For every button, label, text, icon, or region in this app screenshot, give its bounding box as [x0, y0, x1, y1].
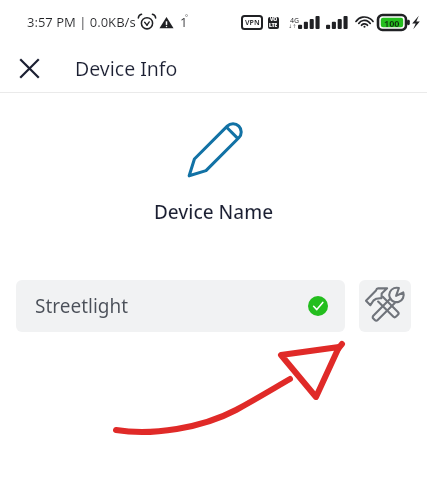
button[interactable]: Streetlight [16, 280, 345, 332]
staticText: ° [185, 13, 188, 23]
staticText: 1 [180, 13, 188, 31]
staticText: ↓↑ [288, 23, 297, 29]
staticText: Streetlight [35, 293, 129, 319]
staticText: VO [270, 16, 278, 23]
staticText: Device Info [75, 55, 178, 82]
staticText: Device Name [0, 199, 427, 225]
button[interactable]: Tools settings [359, 280, 411, 332]
staticText: 3:57 PM | 0.0KB/s [27, 13, 136, 31]
staticText: 4G [290, 16, 300, 26]
staticText: LTE [269, 22, 278, 29]
button[interactable]: Close [12, 51, 46, 85]
staticText: 100 [384, 17, 400, 29]
staticText: VPN [245, 18, 260, 28]
